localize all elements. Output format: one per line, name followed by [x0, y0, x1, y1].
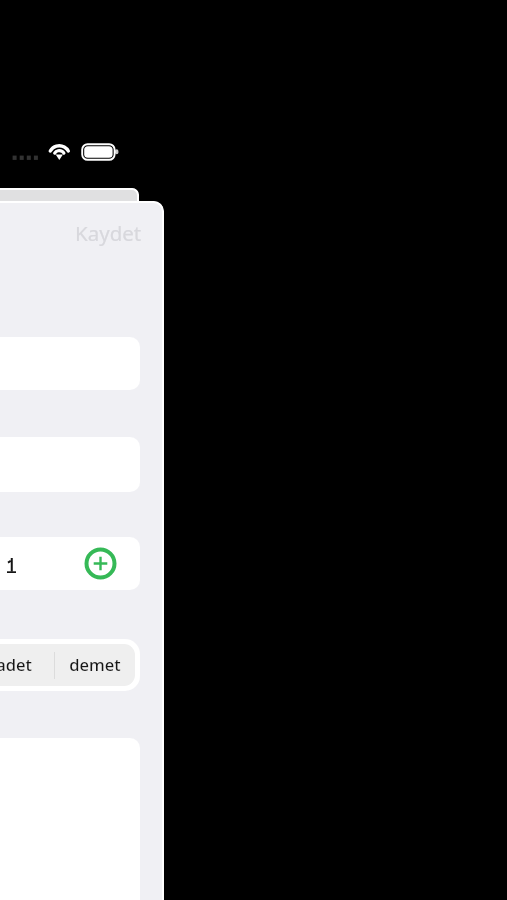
staticText: demet — [69, 653, 121, 676]
button[interactable]: Add — [84, 547, 117, 580]
button[interactable]: demet — [55, 644, 135, 686]
button[interactable]: Add — [0, 537, 140, 590]
staticText: Kaydet — [75, 219, 142, 247]
button[interactable]: Kaydet — [68, 215, 147, 255]
staticText: adet — [0, 653, 32, 676]
button[interactable]: adet — [0, 644, 54, 686]
